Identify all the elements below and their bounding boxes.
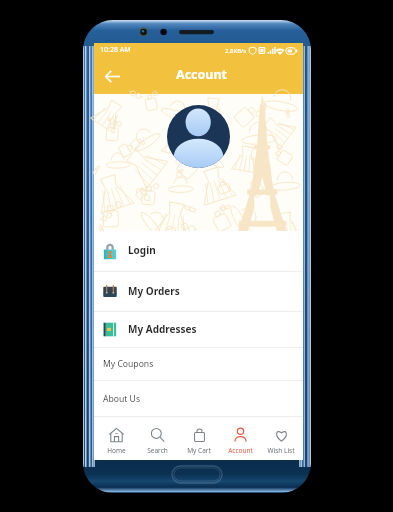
button[interactable]: Login (94, 231, 303, 271)
staticText: My Addresses (128, 322, 197, 336)
button[interactable]: Back (98, 62, 126, 90)
staticText: Login (128, 243, 156, 257)
staticText: About Us (103, 393, 141, 405)
staticText: Home (107, 446, 126, 455)
staticText: My Coupons (103, 358, 154, 370)
button[interactable]: Search (138, 425, 176, 455)
button[interactable]: Account (221, 425, 259, 455)
button[interactable]: My Coupons (94, 348, 303, 380)
staticText: 10:28 AM (100, 45, 131, 55)
button[interactable]: About Us (94, 381, 303, 416)
button[interactable]: My Cart (180, 425, 218, 455)
staticText: My Cart (187, 446, 211, 455)
staticText: Search (147, 446, 168, 455)
staticText: Account (176, 66, 228, 83)
staticText: My Orders (128, 284, 180, 298)
button[interactable]: Wish List (262, 425, 300, 455)
button[interactable]: Home (97, 425, 135, 455)
button[interactable]: My Orders (94, 272, 303, 311)
staticText: Wish List (267, 446, 295, 455)
button[interactable]: My Addresses (94, 312, 303, 347)
staticText: 2.8KB/s (225, 47, 247, 55)
staticText: Account (228, 446, 253, 455)
